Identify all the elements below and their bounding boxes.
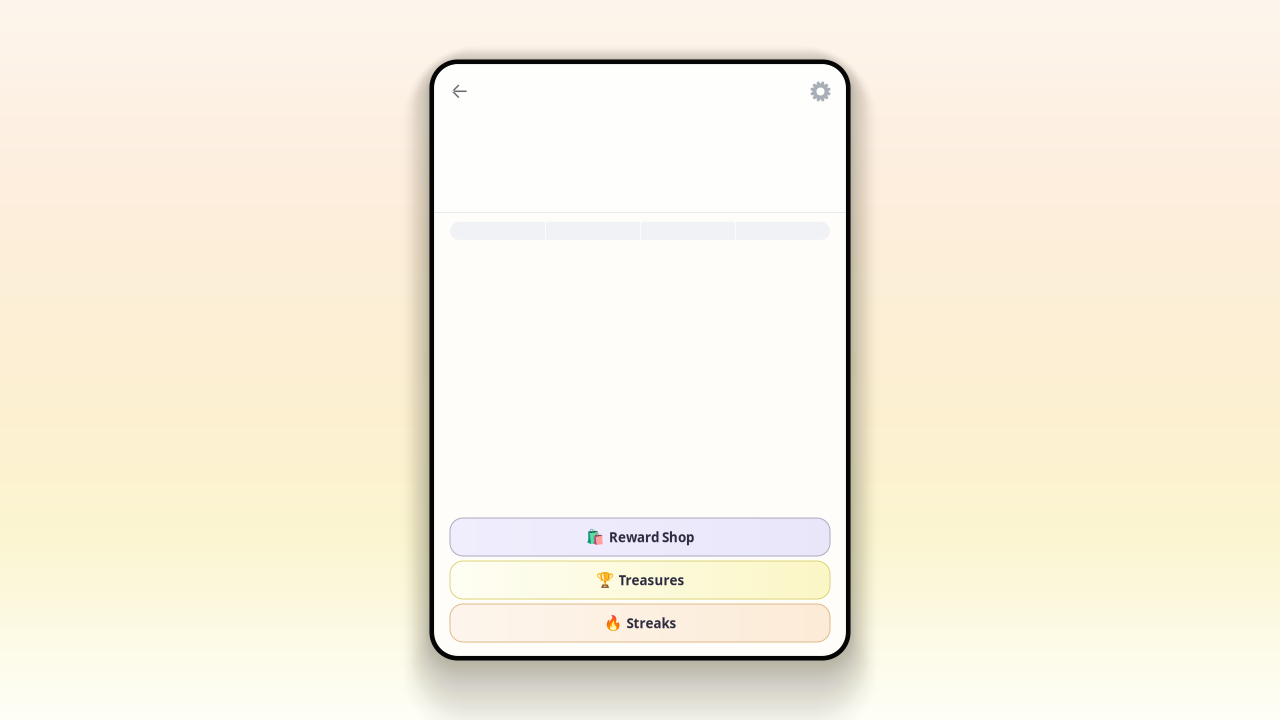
staticText: 🏆 <box>595 572 613 588</box>
staticText: Reward Shop <box>609 528 694 546</box>
button[interactable]: 🔥 <box>450 604 830 642</box>
staticText: 🛍️ <box>586 529 604 545</box>
button[interactable]: 🏆 <box>450 561 830 599</box>
button[interactable]: Back <box>445 78 473 104</box>
button[interactable]: Settings <box>806 77 835 106</box>
button[interactable]: 🛍️ <box>450 518 830 556</box>
staticText: Streaks <box>626 614 676 632</box>
staticText: Treasures <box>618 571 684 589</box>
staticText: 🔥 <box>603 615 621 631</box>
